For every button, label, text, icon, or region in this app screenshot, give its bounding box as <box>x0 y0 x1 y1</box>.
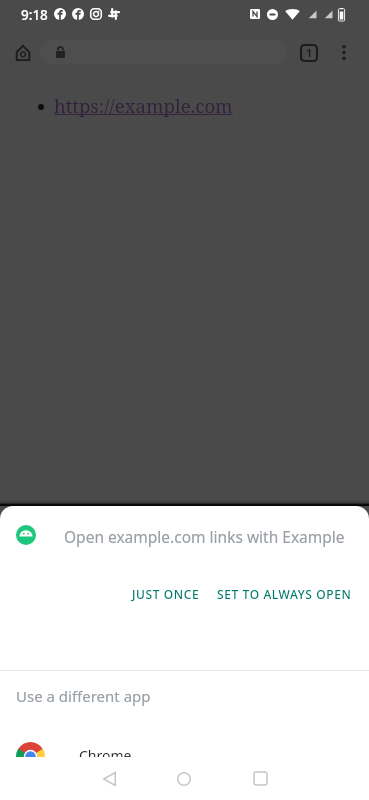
staticText: JUST ONCE <box>132 586 200 602</box>
button[interactable]: More options <box>328 37 359 68</box>
staticText: SET TO ALWAYS OPEN <box>217 586 352 602</box>
staticText: 1 <box>306 46 313 60</box>
button[interactable]: https://example.com <box>54 93 233 118</box>
staticText: Use a different app <box>16 686 151 706</box>
button[interactable]: Home <box>7 37 38 68</box>
button[interactable]: Back <box>85 757 133 800</box>
button[interactable]: Search or type URL <box>40 40 287 64</box>
staticText: Chrome <box>79 746 132 765</box>
button[interactable]: SET TO ALWAYS OPEN <box>209 581 360 607</box>
button[interactable]: Chrome <box>0 734 369 790</box>
button[interactable]: JUST ONCE <box>124 581 208 607</box>
staticText: Open example.com links with Example <box>64 526 345 547</box>
button[interactable]: Recent apps <box>236 757 284 800</box>
staticText: 9:18 <box>21 6 48 24</box>
button[interactable]: Home <box>160 757 208 800</box>
button[interactable]: Switch tabs <box>293 37 324 68</box>
